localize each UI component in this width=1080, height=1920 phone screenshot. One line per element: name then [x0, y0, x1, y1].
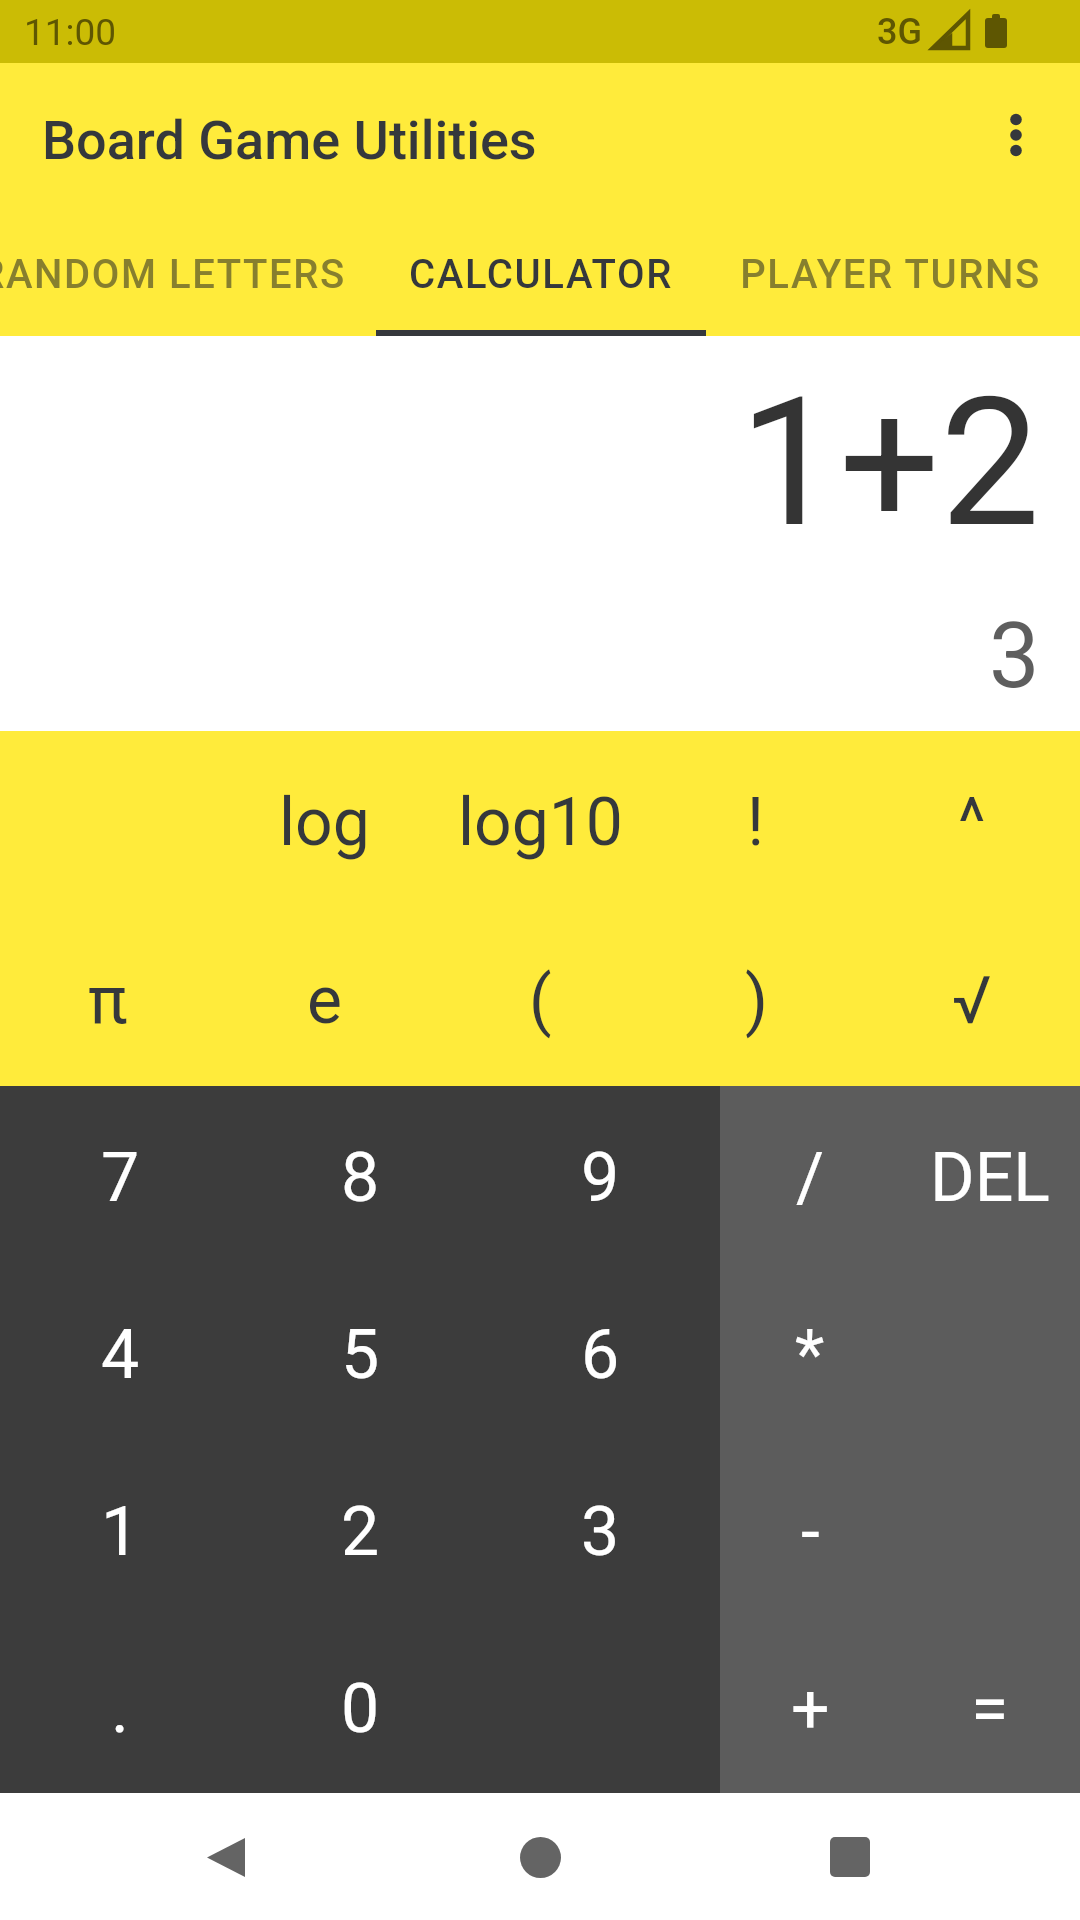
staticText: -: [801, 1492, 820, 1572]
staticText: 3G: [877, 11, 922, 53]
button[interactable]: ): [648, 908, 864, 1086]
button[interactable]: More options: [970, 89, 1062, 181]
button[interactable]: 7: [0, 1086, 240, 1262]
button[interactable]: log10: [432, 731, 648, 908]
button[interactable]: Home: [490, 1807, 590, 1907]
button[interactable]: (: [432, 908, 648, 1086]
staticText: DEL: [930, 1138, 1050, 1218]
staticText: π: [88, 962, 128, 1039]
staticText: e: [307, 962, 342, 1039]
button[interactable]: .: [0, 1616, 240, 1793]
staticText: RANDOM LETTERS: [0, 251, 346, 298]
staticText: ^: [958, 784, 986, 861]
button[interactable]: 3: [480, 1439, 720, 1616]
staticText: 0: [341, 1669, 380, 1749]
staticText: PLAYER TURNS: [740, 251, 1041, 298]
button[interactable]: e: [216, 908, 432, 1086]
button[interactable]: -: [720, 1439, 900, 1616]
button[interactable]: ^: [864, 731, 1080, 908]
staticText: CALCULATOR: [409, 251, 673, 298]
button[interactable]: PLAYER TURNS: [705, 213, 1075, 336]
button[interactable]: 8: [240, 1086, 480, 1262]
staticText: *: [795, 1315, 825, 1395]
staticText: 7: [101, 1138, 140, 1218]
staticText: log10: [458, 784, 623, 861]
button[interactable]: DEL: [900, 1086, 1080, 1262]
button[interactable]: RANDOM LETTERS: [0, 213, 376, 336]
button[interactable]: !: [648, 731, 864, 908]
button[interactable]: +: [720, 1616, 900, 1793]
staticText: 2: [341, 1492, 380, 1572]
button[interactable]: π: [0, 908, 216, 1086]
staticText: .: [111, 1669, 129, 1749]
button[interactable]: 1: [0, 1439, 240, 1616]
button[interactable]: Back: [176, 1807, 276, 1907]
button[interactable]: 2: [240, 1439, 480, 1616]
button[interactable]: Recent apps: [800, 1807, 900, 1907]
staticText: 1+2: [739, 359, 1041, 568]
staticText: 6: [581, 1315, 620, 1395]
button[interactable]: 6: [480, 1262, 720, 1439]
button[interactable]: 0: [240, 1616, 480, 1793]
button[interactable]: 9: [480, 1086, 720, 1262]
staticText: 3: [581, 1492, 620, 1572]
staticText: 1: [101, 1492, 140, 1572]
staticText: (: [529, 962, 552, 1039]
staticText: =: [971, 1669, 1009, 1749]
staticText: 4: [101, 1315, 140, 1395]
button[interactable]: /: [720, 1086, 900, 1262]
staticText: Board Game Utilities: [42, 109, 537, 172]
button[interactable]: 5: [240, 1262, 480, 1439]
button[interactable]: log: [216, 731, 432, 908]
staticText: log: [279, 784, 370, 861]
staticText: 5: [341, 1315, 380, 1395]
button[interactable]: =: [900, 1616, 1080, 1793]
staticText: 8: [341, 1138, 380, 1218]
staticText: /: [796, 1138, 825, 1218]
staticText: ): [745, 962, 768, 1039]
staticText: 9: [581, 1138, 620, 1218]
button[interactable]: √: [864, 908, 1080, 1086]
staticText: +: [791, 1669, 830, 1749]
staticText: !: [747, 784, 765, 861]
button[interactable]: 4: [0, 1262, 240, 1439]
staticText: √: [952, 962, 992, 1039]
staticText: 3: [989, 604, 1040, 709]
button[interactable]: CALCULATOR: [376, 213, 706, 336]
staticText: 11:00: [24, 11, 117, 54]
button[interactable]: *: [720, 1262, 900, 1439]
